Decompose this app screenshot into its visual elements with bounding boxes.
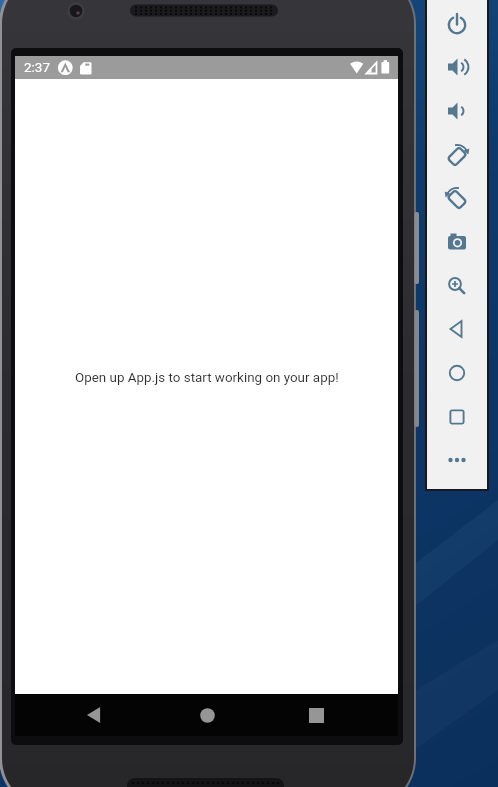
staticText: 2:37 <box>24 59 51 75</box>
button[interactable] <box>438 48 476 86</box>
button[interactable] <box>438 136 476 174</box>
button[interactable] <box>77 697 113 733</box>
button[interactable] <box>438 310 476 348</box>
button[interactable] <box>438 223 476 261</box>
button[interactable] <box>298 697 334 733</box>
button[interactable] <box>189 697 225 733</box>
button[interactable] <box>438 92 476 130</box>
button[interactable] <box>438 179 476 217</box>
button[interactable] <box>438 354 476 392</box>
button[interactable] <box>438 5 476 43</box>
button[interactable] <box>438 441 476 479</box>
staticText: Open up App.js to start working on your … <box>75 370 339 386</box>
button[interactable] <box>438 267 476 305</box>
button[interactable] <box>438 398 476 436</box>
